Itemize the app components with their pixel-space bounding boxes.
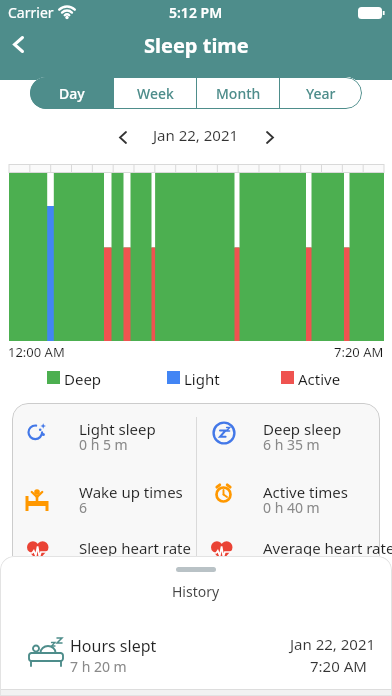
staticText: 6 <box>79 498 88 517</box>
staticText: Deep sleep <box>263 419 342 439</box>
staticText: Active <box>298 369 341 389</box>
staticText: 0 h 5 m <box>79 435 128 454</box>
staticText: 6 h 35 m <box>263 435 320 454</box>
staticText: Sleep time <box>144 32 249 59</box>
staticText: Day <box>59 84 85 103</box>
staticText: 7:20 AM <box>334 343 384 361</box>
staticText: History <box>172 582 220 601</box>
button[interactable] <box>108 122 138 152</box>
staticText: 5:12 PM <box>169 3 223 22</box>
button[interactable]: Week <box>114 77 196 109</box>
staticText: Deep <box>64 369 102 389</box>
staticText: Sleep heart rate <box>79 538 191 558</box>
staticText: 7:20 AM <box>310 656 367 676</box>
staticText: Light <box>184 369 220 389</box>
staticText: Month <box>216 84 261 103</box>
staticText: Light sleep <box>79 419 156 439</box>
staticText: Average heart rate <box>263 538 392 558</box>
button[interactable]: Hours slept <box>0 626 392 686</box>
staticText: Wake up times <box>79 482 183 502</box>
staticText: Jan 22, 2021 <box>290 634 376 654</box>
staticText: 0 h 40 m <box>263 498 320 517</box>
button[interactable] <box>255 122 285 152</box>
staticText: Week <box>137 84 174 103</box>
button[interactable]: Year <box>280 77 362 109</box>
button[interactable]: Month <box>197 77 279 109</box>
staticText: Year <box>306 84 336 103</box>
staticText: 7 h 20 m <box>70 657 127 676</box>
staticText: Hours slept <box>70 635 157 657</box>
staticText: 12:00 AM <box>8 343 65 361</box>
button[interactable] <box>4 30 40 60</box>
staticText: Active times <box>263 482 349 502</box>
staticText: Jan 22, 2021 <box>153 125 239 145</box>
staticText: Carrier <box>8 3 54 22</box>
button[interactable]: Day <box>30 77 113 109</box>
